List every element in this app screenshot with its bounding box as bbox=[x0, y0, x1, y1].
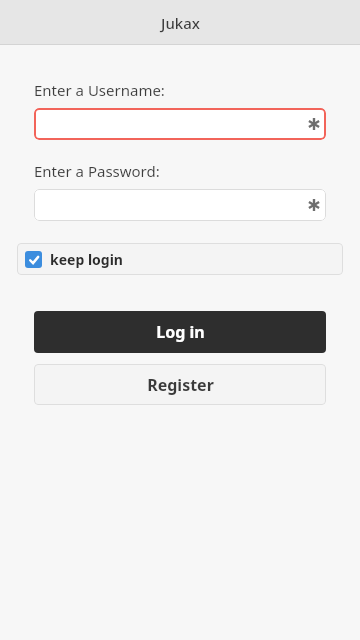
staticText: Register bbox=[147, 374, 214, 396]
button[interactable]: Register bbox=[34, 364, 326, 405]
button[interactable]: keep login bbox=[17, 243, 343, 275]
staticText: Log in bbox=[156, 321, 205, 343]
button[interactable]: Text field bbox=[34, 108, 326, 140]
staticText: keep login bbox=[50, 250, 123, 269]
button[interactable]: Log in bbox=[34, 311, 326, 353]
staticText: Jukax bbox=[161, 13, 200, 33]
staticText: Enter a Password: bbox=[34, 161, 160, 181]
staticText: Enter a Username: bbox=[34, 80, 165, 100]
button[interactable]: Text field bbox=[34, 189, 326, 221]
